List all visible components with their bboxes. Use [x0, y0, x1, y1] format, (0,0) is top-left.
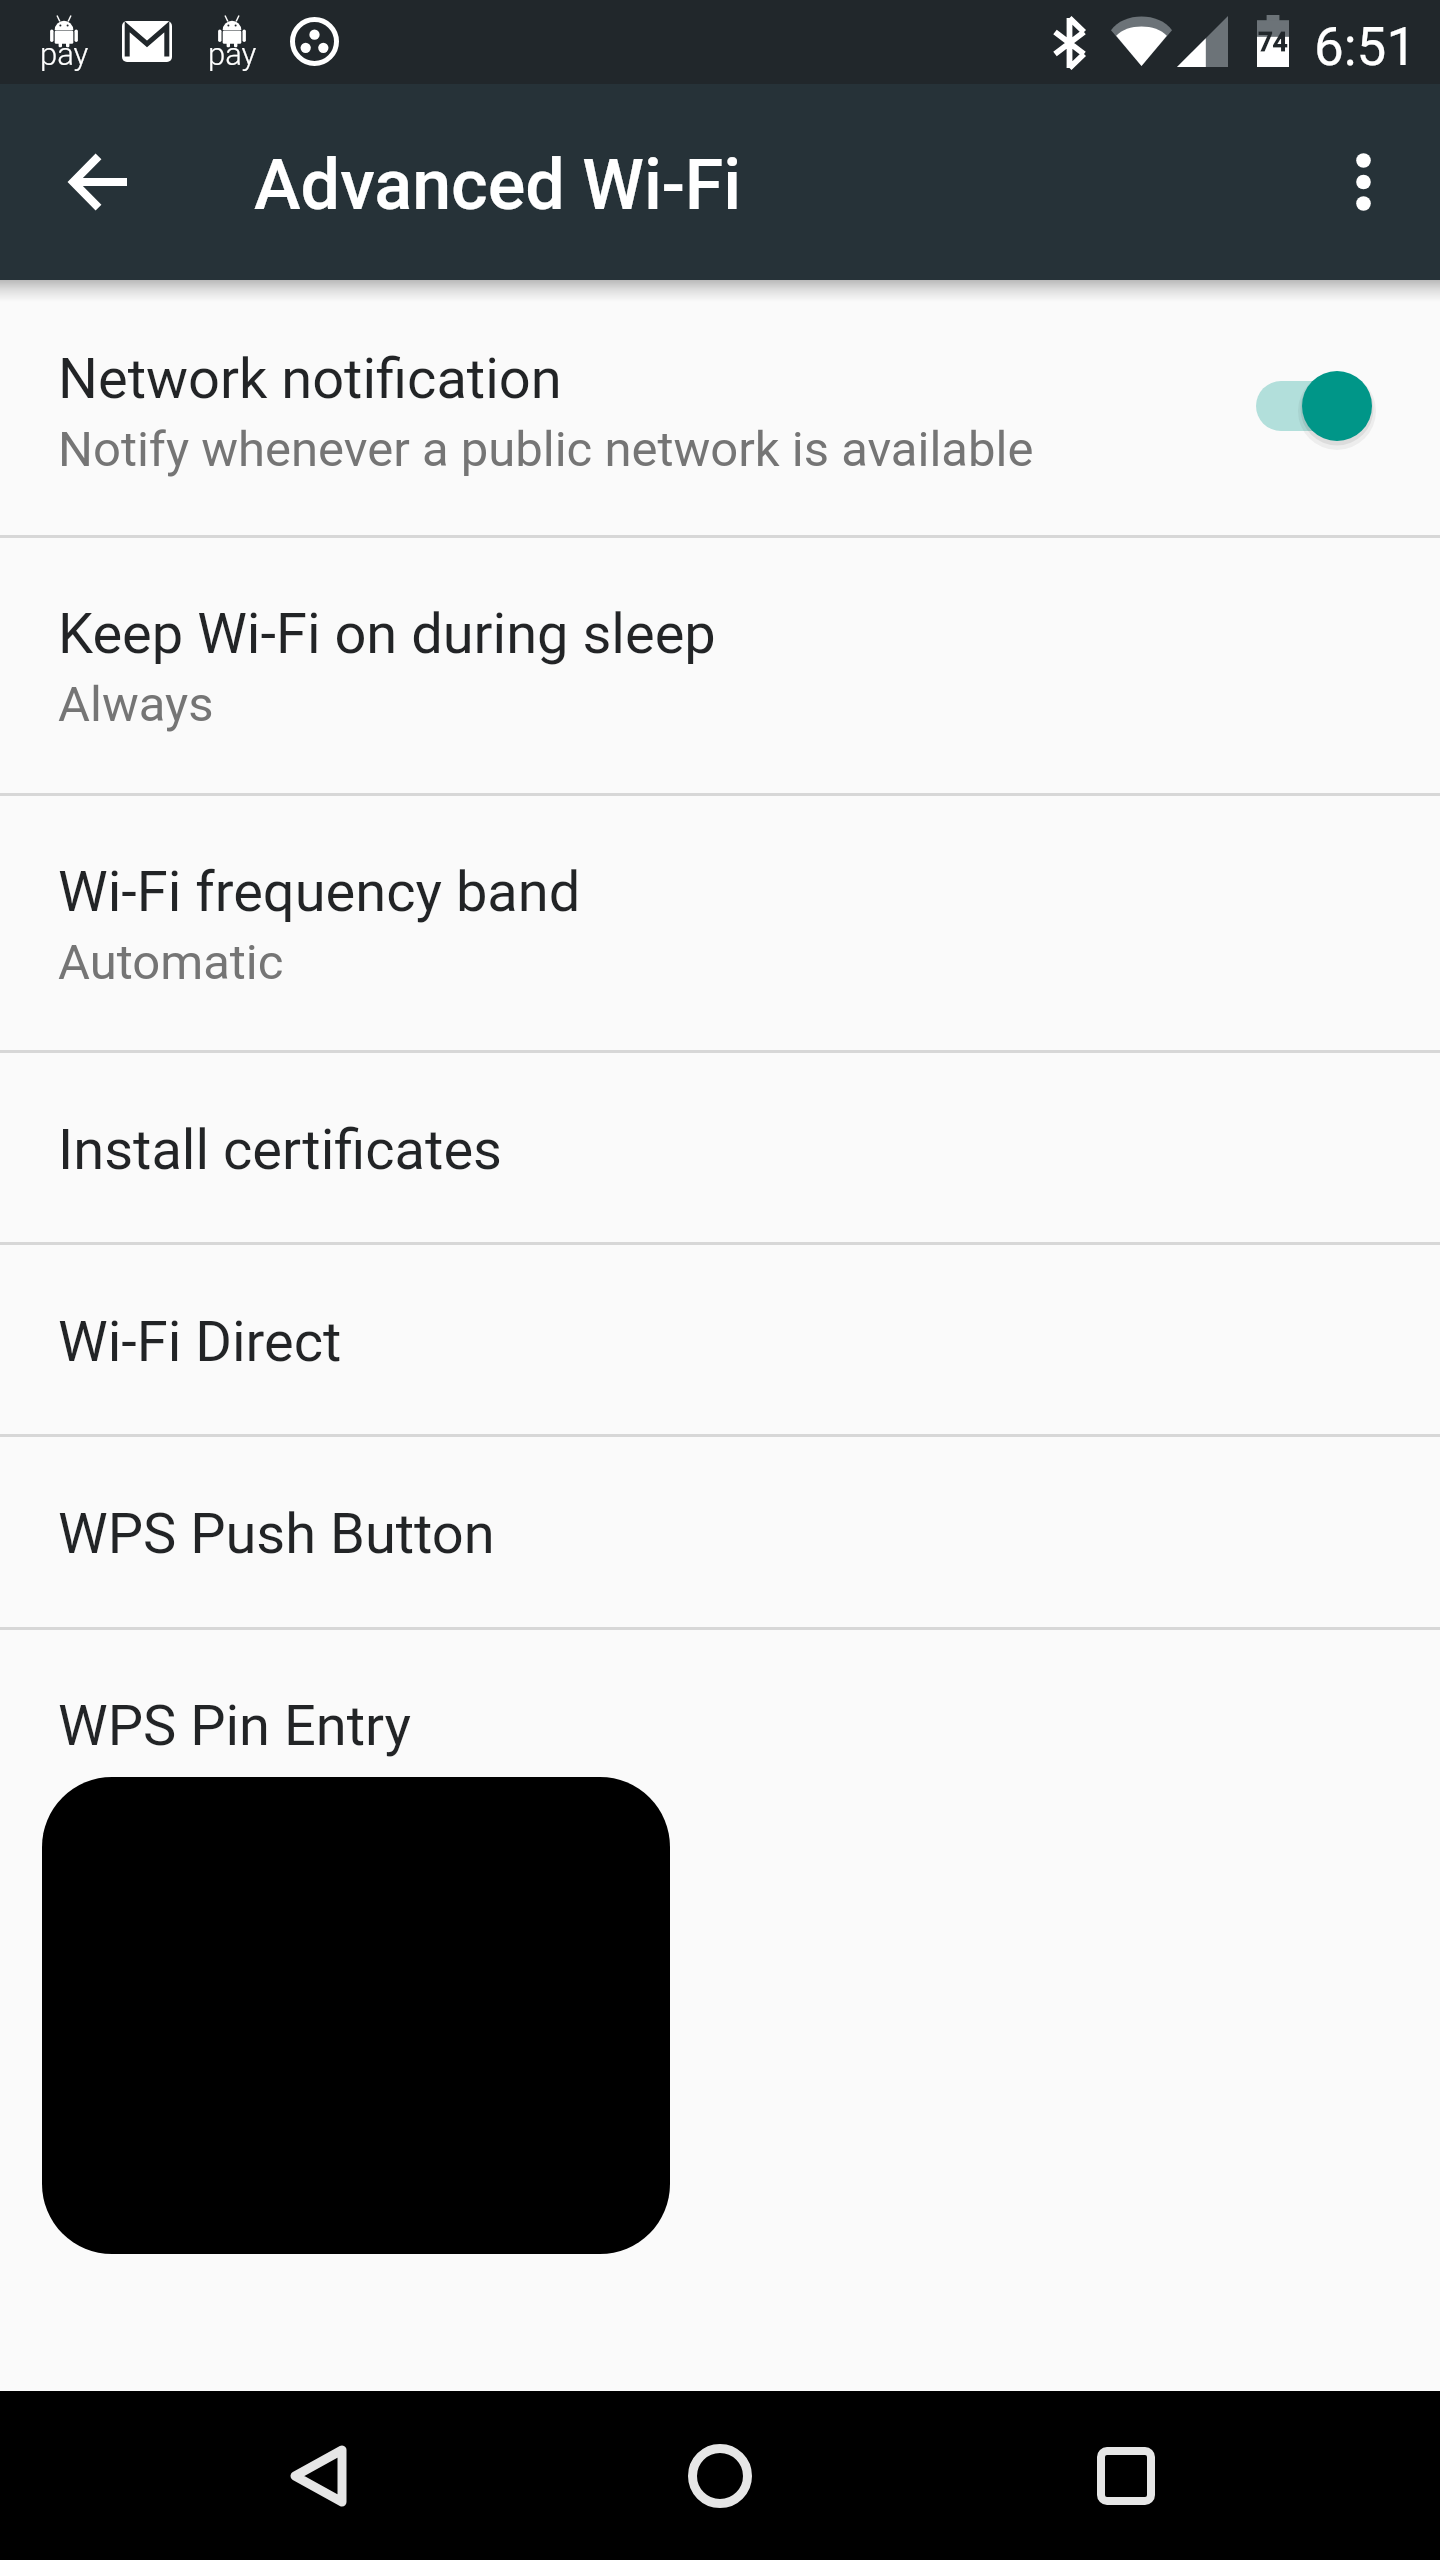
staticText: Notify whenever a public network is avai… [58, 421, 1034, 478]
staticText: 74 [1258, 27, 1288, 57]
button[interactable]: Network notification toggle, on [1256, 358, 1390, 454]
staticText: Advanced Wi-Fi [254, 144, 742, 226]
staticText: Always [58, 676, 214, 733]
staticText: WPS Push Button [58, 1501, 495, 1567]
staticText: 6:51 [1314, 16, 1417, 78]
staticText: WPS Pin Entry [58, 1693, 411, 1759]
staticText: Network notification [58, 346, 562, 412]
button[interactable]: WPS Pin Entry [0, 1630, 1440, 2270]
button[interactable]: More options [1295, 114, 1431, 250]
staticText: Keep Wi-Fi on during sleep [58, 601, 716, 667]
button[interactable]: Home [650, 2406, 790, 2546]
button[interactable]: Wi-Fi frequency band [0, 796, 1440, 1050]
staticText: Wi-Fi Direct [58, 1309, 342, 1375]
staticText: pay [208, 36, 256, 72]
staticText: Automatic [58, 934, 284, 991]
button[interactable]: Network notification [0, 280, 1440, 535]
button[interactable]: WPS Push Button [0, 1437, 1440, 1627]
button[interactable]: Keep Wi-Fi on during sleep [0, 538, 1440, 793]
staticText: pay [40, 36, 88, 72]
button[interactable]: Wi-Fi Direct [0, 1245, 1440, 1434]
staticText: Install certificates [58, 1117, 502, 1183]
button[interactable]: Recent apps [1056, 2406, 1196, 2546]
button[interactable]: Install certificates [0, 1053, 1440, 1242]
staticText: Wi-Fi frequency band [58, 859, 581, 925]
button[interactable]: Back [248, 2406, 388, 2546]
button[interactable]: Navigate up [30, 114, 166, 250]
